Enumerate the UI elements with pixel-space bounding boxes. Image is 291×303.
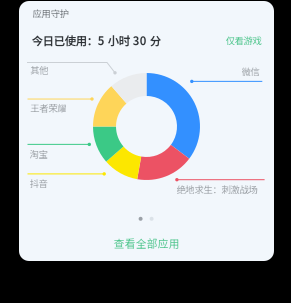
staticText: 绝地求生：刺激战场 <box>176 182 257 196</box>
staticText: 今日已使用：5 小时 30 分 <box>32 32 161 49</box>
staticText: 应用守护 <box>32 6 68 20</box>
staticText: 抖音 <box>29 176 47 190</box>
button[interactable]: 仅看游戏 <box>225 33 261 47</box>
staticText: 仅看游戏 <box>225 33 261 47</box>
staticText: 查看全部应用 <box>114 235 180 251</box>
staticText: 王者荣耀 <box>30 101 66 114</box>
button[interactable]: 查看全部应用 <box>114 235 180 251</box>
staticText: 微信 <box>241 65 259 78</box>
staticText: 淘宝 <box>29 147 47 160</box>
staticText: 其他 <box>30 63 48 76</box>
